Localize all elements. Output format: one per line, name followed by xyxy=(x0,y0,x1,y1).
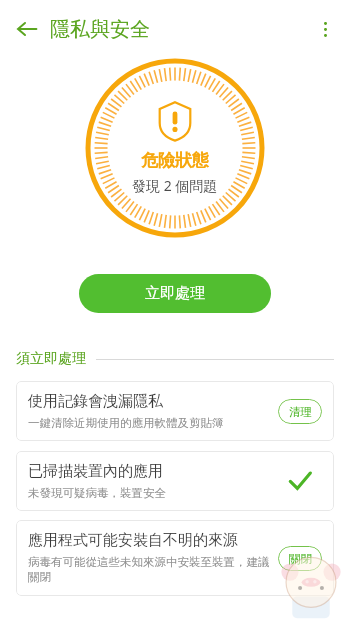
staticText: 已掃描裝置內的應用 xyxy=(28,462,163,481)
staticText: 清理 xyxy=(289,405,312,419)
staticText: 一鍵清除近期使用的應用軟體及剪貼簿 xyxy=(28,416,224,430)
staticText: 立即處理 xyxy=(145,284,205,303)
staticText: 危險狀態 xyxy=(141,150,209,171)
button[interactable]: 應用程式可能安裝自不明的來源 xyxy=(16,520,334,596)
staticText: 須立即處理 xyxy=(16,350,86,368)
button[interactable]: 已掃描裝置內的應用 xyxy=(16,451,334,511)
staticText: 發現 2 個問題 xyxy=(132,176,218,195)
button[interactable]: 立即處理 xyxy=(79,274,271,313)
staticText: 隱私與安全 xyxy=(50,17,150,42)
button[interactable]: 關閉 xyxy=(278,546,322,571)
button[interactable]: 清理 xyxy=(278,399,322,424)
staticText: 關閉 xyxy=(289,552,312,566)
staticText: 未發現可疑病毒，裝置安全 xyxy=(28,486,166,500)
button[interactable]: More options xyxy=(306,10,344,48)
staticText: 使用記錄會洩漏隱私 xyxy=(28,392,163,411)
button[interactable]: 使用記錄會洩漏隱私 xyxy=(16,381,334,441)
staticText: 病毒有可能從這些未知來源中安裝至裝置，建議關閉 xyxy=(28,555,270,585)
button[interactable]: Back xyxy=(6,8,48,50)
staticText: 應用程式可能安裝自不明的來源 xyxy=(28,531,238,550)
